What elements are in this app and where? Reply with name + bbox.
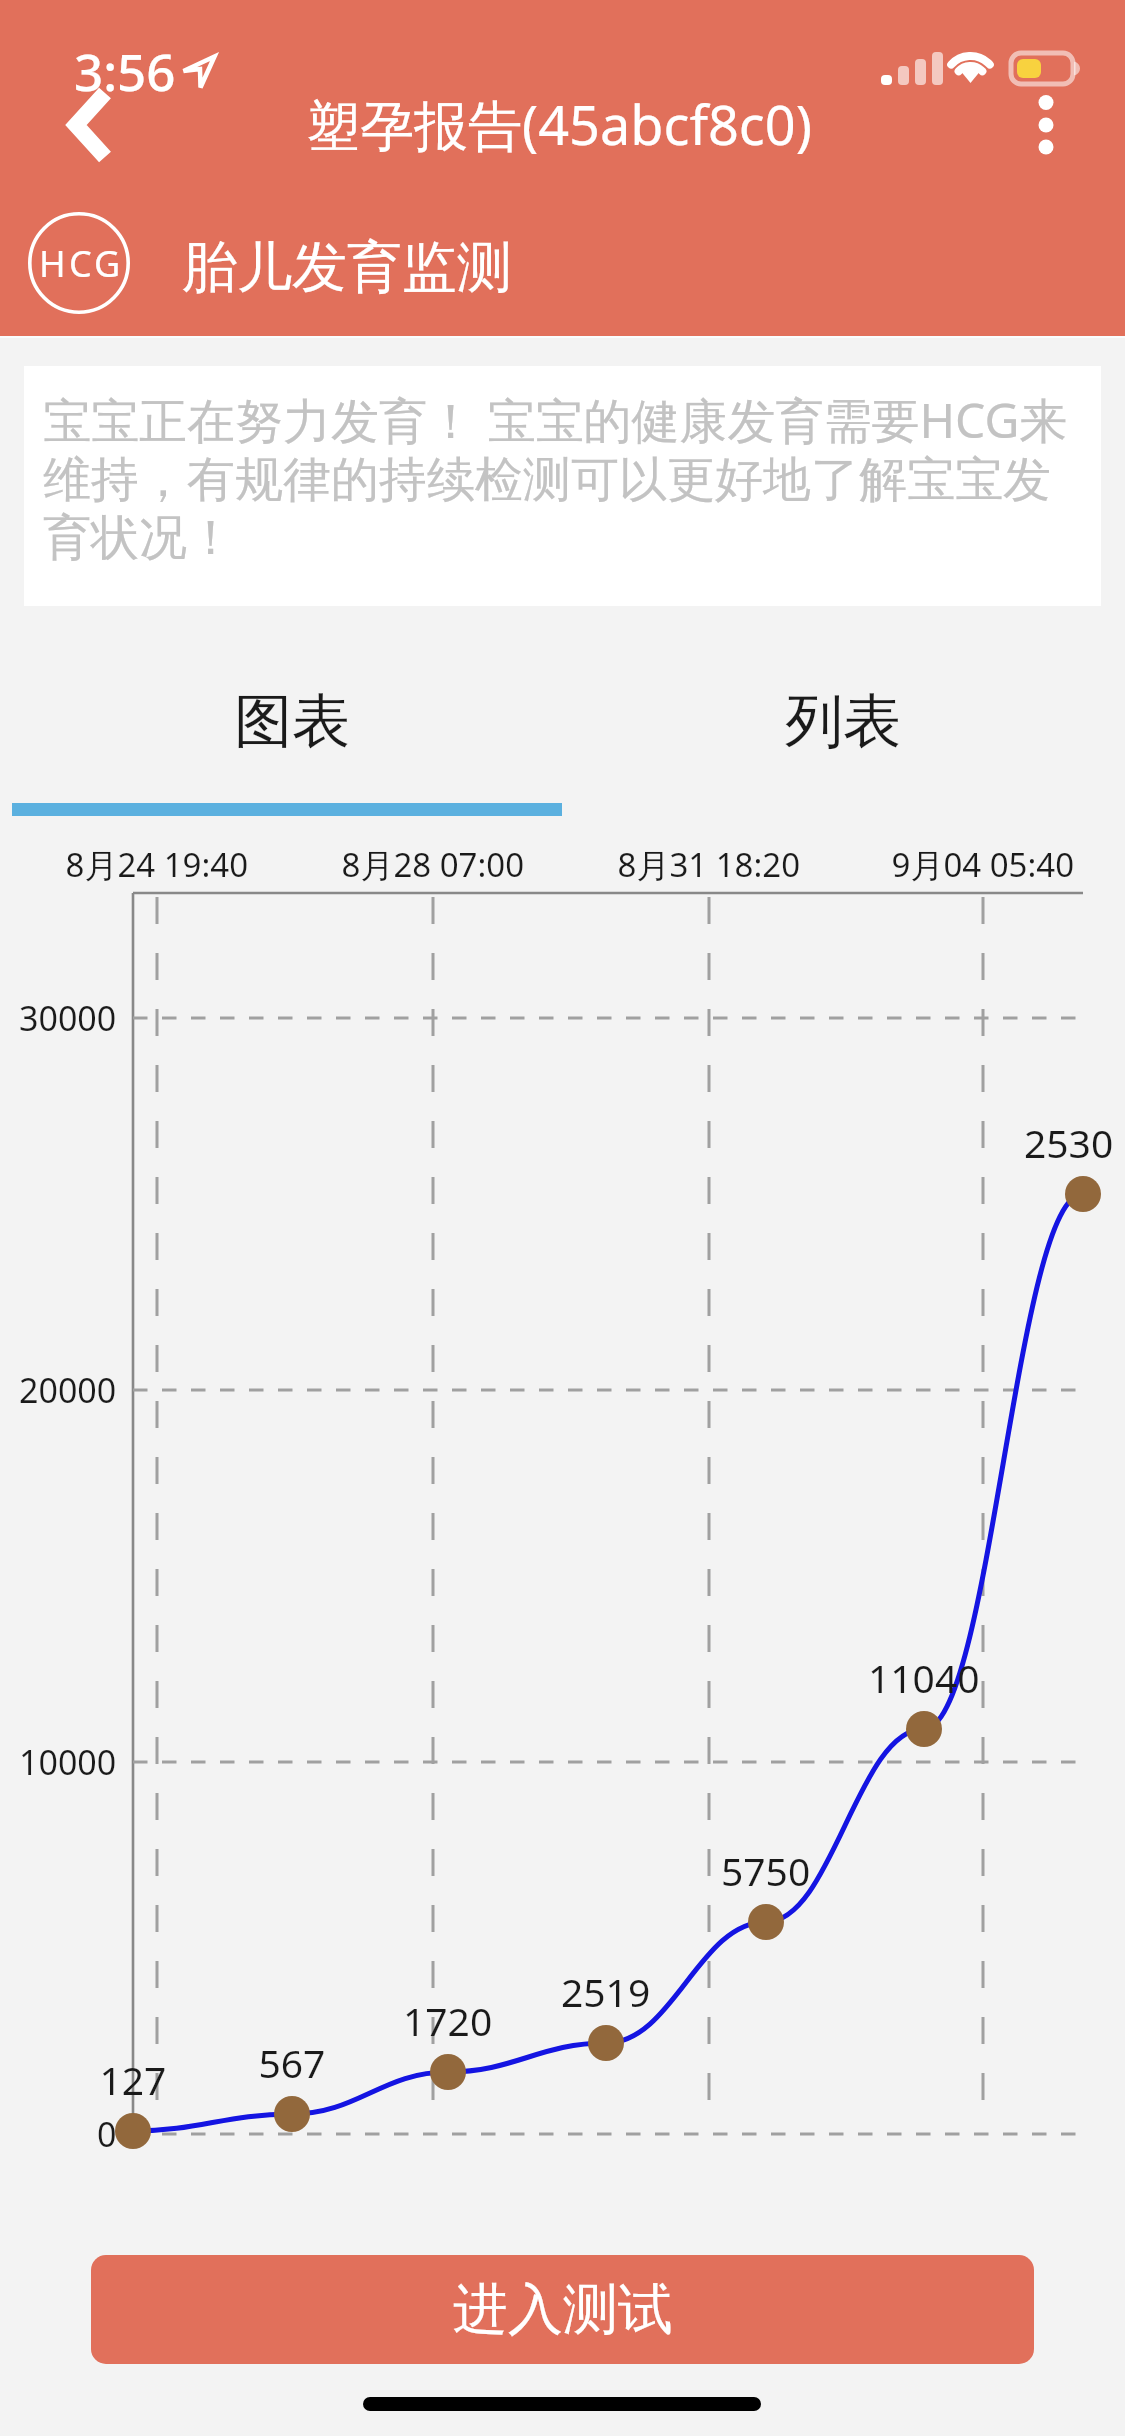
staticText: 3:56 <box>74 36 176 105</box>
button[interactable]: 图表 <box>17 606 567 803</box>
staticText: 胎儿发育监测 <box>182 233 512 302</box>
staticText: 列表 <box>785 685 901 758</box>
button[interactable]: More options <box>1000 80 1092 170</box>
staticText: 图表 <box>234 685 350 758</box>
staticText: 宝宝正在努力发育！ 宝宝的健康发育需要HCG来 维持，有规律的持续检测可以更好地… <box>43 387 1068 569</box>
staticText: HCG <box>39 239 124 288</box>
button[interactable]: 列表 <box>567 606 1118 803</box>
staticText: 塑孕报告(45abcf8c0) <box>306 87 812 161</box>
staticText: 进入测试 <box>453 2275 673 2344</box>
button[interactable]: Back <box>30 78 146 182</box>
button[interactable]: 进入测试 <box>91 2255 1034 2364</box>
